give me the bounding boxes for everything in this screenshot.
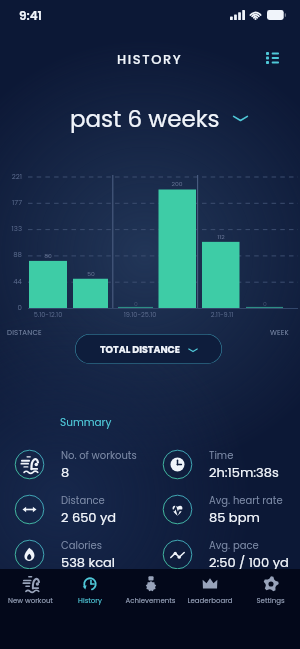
staticText: Time	[209, 448, 234, 462]
button[interactable]: Achievements	[120, 569, 180, 649]
button[interactable]: Time	[162, 445, 300, 483]
staticText: 2.11-9.11	[190, 310, 254, 319]
button[interactable]: Leaderboard	[180, 569, 240, 649]
staticText: 112	[207, 233, 235, 241]
staticText: 0	[0, 303, 22, 313]
button[interactable]: New workout	[0, 569, 60, 649]
staticText: 538 kcal	[61, 553, 116, 571]
staticText: 2h:15m:38s	[209, 463, 279, 481]
staticText: 88	[0, 250, 22, 260]
staticText: 200	[163, 180, 191, 188]
staticText: Summary	[60, 415, 112, 430]
staticText: Settings	[256, 596, 285, 606]
button[interactable]: Settings	[240, 569, 300, 649]
staticText: No. of workouts	[61, 448, 137, 462]
staticText: Calories	[61, 538, 102, 552]
staticText: 0	[122, 300, 150, 308]
button[interactable]: Avg. pace	[162, 535, 300, 573]
staticText: 177	[0, 198, 22, 208]
button[interactable]: History	[60, 569, 120, 649]
staticText: History	[78, 596, 102, 606]
staticText: Achievements	[125, 596, 176, 606]
staticText: 5.10-12.10	[16, 310, 80, 319]
staticText: 50	[77, 270, 105, 278]
staticText: 19.10-25.10	[108, 310, 172, 319]
button[interactable]: Distance	[14, 490, 154, 528]
staticText: 221	[0, 172, 22, 182]
staticText: Leaderboard	[187, 596, 233, 606]
staticText: WEEK	[270, 328, 290, 338]
staticText: TOTAL DISTANCE	[100, 343, 180, 356]
staticText: 0	[251, 300, 279, 308]
staticText: 8	[61, 463, 70, 481]
staticText: 133	[0, 224, 22, 234]
staticText: 85 bpm	[209, 508, 260, 526]
staticText: past 6 weeks	[70, 103, 220, 133]
staticText: HISTORY	[117, 50, 183, 68]
button[interactable]: Avg. heart rate	[162, 490, 300, 528]
staticText: New workout	[8, 596, 53, 606]
button[interactable]: TOTAL DISTANCE	[75, 334, 222, 364]
staticText: Distance	[61, 493, 105, 507]
staticText: 9:41	[19, 7, 42, 24]
button[interactable]: No. of workouts	[14, 445, 154, 483]
staticText: 2:50 / 100 yd	[209, 553, 289, 571]
button[interactable]: Calories	[14, 535, 154, 573]
staticText: DISTANCE	[7, 328, 42, 338]
staticText: 2 650 yd	[61, 508, 117, 526]
button[interactable]: past 6 weeks	[70, 103, 248, 133]
staticText: 44	[0, 277, 22, 287]
staticText: 80	[34, 252, 62, 260]
staticText: Avg. pace	[209, 538, 259, 552]
staticText: Avg. heart rate	[209, 493, 283, 507]
button[interactable]: List view	[256, 42, 288, 74]
